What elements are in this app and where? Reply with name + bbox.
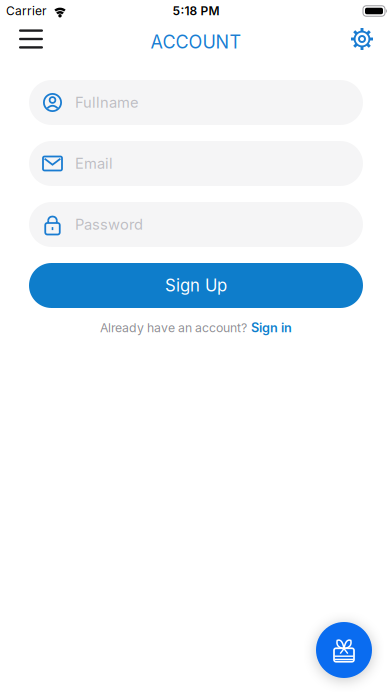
staticText: Password [75, 216, 143, 233]
staticText: Already have an account? [100, 320, 247, 335]
button[interactable]: Fullname [29, 80, 363, 125]
button[interactable]: Settings [345, 22, 379, 56]
staticText: Sign in [251, 320, 292, 335]
staticText: 5:18 PM [172, 4, 219, 18]
staticText: Fullname [75, 94, 139, 111]
staticText: Email [75, 155, 113, 172]
button[interactable]: Sign in [251, 320, 292, 335]
staticText: Carrier [6, 4, 47, 18]
button[interactable]: Menu [11, 21, 51, 57]
button[interactable]: Password [29, 202, 363, 247]
staticText: ACCOUNT [150, 31, 241, 53]
button[interactable]: Email [29, 141, 363, 186]
button[interactable]: Rewards [316, 622, 372, 678]
button[interactable]: Sign Up [29, 263, 363, 308]
staticText: Sign Up [165, 275, 227, 296]
